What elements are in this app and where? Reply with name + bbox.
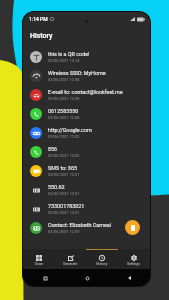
- staticText: 03/06/2021 12:01: [48, 210, 80, 215]
- button[interactable]: 550.62: [23, 180, 150, 199]
- staticText: 03/06/2021 12:02: [48, 134, 80, 139]
- staticText: 0612583550: [48, 108, 79, 114]
- staticText: 03/06/2021 12:09: [48, 229, 80, 234]
- staticText: Contact: Elizabeth Carneal: [48, 222, 112, 228]
- staticText: 03/06/2021 12:08: [48, 96, 80, 101]
- button[interactable]: Contact: Elizabeth Carneal: [23, 218, 150, 237]
- button[interactable]: 0612583550: [23, 104, 150, 123]
- button[interactable]: Delete history: [125, 220, 140, 235]
- staticText: 1:14 PM: [29, 16, 48, 22]
- button[interactable]: Wireless SSID: MyHome: [23, 66, 150, 85]
- button[interactable]: 856: [23, 142, 150, 161]
- staticText: History: [30, 32, 53, 40]
- staticText: 03/06/2021 12:01: [48, 191, 80, 196]
- staticText: History: [96, 262, 108, 266]
- button[interactable]: SMS to: 365: [23, 161, 150, 180]
- button[interactable]: Back: [124, 273, 134, 283]
- staticText: http://Google.com: [48, 127, 92, 133]
- staticText: 550.62: [48, 184, 65, 190]
- staticText: 03/06/2021 12:02: [48, 153, 80, 158]
- staticText: Generate: [63, 262, 78, 266]
- button[interactable]: History: [86, 249, 118, 269]
- staticText: 856: [48, 146, 58, 152]
- button[interactable]: http://Google.com: [23, 123, 150, 142]
- button[interactable]: 733001783021: [23, 199, 150, 218]
- staticText: SMS to: 365: [48, 165, 77, 171]
- staticText: 03/06/2021 13:14: [48, 58, 80, 63]
- staticText: 03/06/2021 12:08: [48, 115, 80, 120]
- button[interactable]: Scan: [23, 249, 54, 269]
- staticText: 733001783021: [48, 203, 85, 209]
- staticText: E-mail to: contact@lookfeel.me: [48, 89, 123, 95]
- button[interactable]: Recents: [40, 273, 50, 283]
- staticText: Wireless SSID: MyHome: [48, 70, 106, 76]
- staticText: 03/06/2021 12:01: [48, 172, 80, 177]
- button[interactable]: Settings: [118, 249, 150, 269]
- staticText: this is a QR code!: [48, 51, 90, 57]
- button[interactable]: E-mail to: contact@lookfeel.me: [23, 85, 150, 104]
- button[interactable]: this is a QR code!: [23, 47, 150, 66]
- button[interactable]: Home: [82, 273, 92, 283]
- staticText: Scan: [35, 262, 43, 266]
- staticText: Settings: [127, 262, 141, 266]
- staticText: 03/06/2021 12:08: [48, 77, 80, 82]
- button[interactable]: Generate: [54, 249, 86, 269]
